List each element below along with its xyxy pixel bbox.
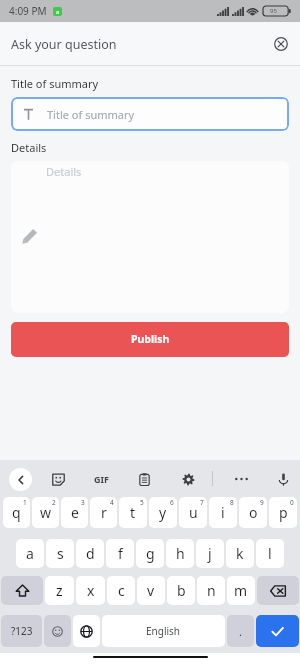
staticText: l [268,544,272,563]
staticText: w [40,503,52,522]
button[interactable]: t [119,497,147,528]
button[interactable]: More options [228,466,254,492]
staticText: 6 [170,498,174,507]
staticText: 5 [140,498,144,507]
button[interactable]: Clipboard [131,466,157,492]
staticText: 2 [52,498,56,507]
staticText: i [221,503,225,522]
button[interactable]: Shift [1,576,43,605]
staticText: e [71,503,79,522]
button[interactable]: i [209,497,237,528]
staticText: c [118,581,125,600]
staticText: 0 [290,498,294,507]
staticText: Details [11,140,47,155]
staticText: GIF [94,473,109,485]
staticText: . [239,624,242,639]
staticText: z [56,581,63,600]
staticText: h [176,544,185,563]
staticText: s [57,544,64,563]
button[interactable]: u [179,497,207,528]
staticText: 3 [81,498,85,507]
staticText: x [87,581,95,600]
staticText: 95 [270,7,277,15]
button[interactable]: a [16,539,44,568]
button[interactable]: Details [11,161,289,313]
button[interactable]: m [227,576,255,605]
staticText: 1 [23,498,27,507]
button[interactable]: GIF [88,466,114,492]
button[interactable]: Publish [11,322,289,357]
staticText: 8 [230,498,234,507]
button[interactable]: q [3,497,30,528]
button[interactable]: w [32,497,59,528]
button[interactable]: Back [7,466,33,492]
button[interactable]: k [226,539,254,568]
staticText: ?123 [11,624,33,638]
button[interactable]: c [107,576,135,605]
staticText: 9 [260,498,264,507]
button[interactable]: Emoji [44,615,71,647]
staticText: a [56,8,60,16]
staticText: Ask your question [11,36,117,53]
button[interactable]: d [76,539,104,568]
button[interactable]: Backspace [257,576,299,605]
button[interactable]: l [256,539,284,568]
button[interactable]: Voice input [270,466,296,492]
button[interactable]: Stickers [45,466,71,492]
button[interactable]: b [167,576,195,605]
staticText: y [159,503,167,522]
button[interactable]: Change language [73,615,100,647]
button[interactable]: . [227,615,254,647]
staticText: 7 [200,498,204,507]
staticText: g [146,544,155,563]
button[interactable]: o [239,497,267,528]
staticText: u [189,503,198,522]
staticText: f [118,544,123,563]
staticText: Publish [131,332,170,346]
staticText: p [279,503,288,522]
button[interactable]: s [46,539,74,568]
button[interactable]: v [137,576,165,605]
staticText: r [101,503,107,522]
staticText: Title of summary [11,76,99,91]
button[interactable]: English [102,615,225,647]
staticText: j [208,544,212,563]
button[interactable]: z [45,576,74,605]
button[interactable]: g [136,539,164,568]
button[interactable]: Enter [256,615,299,647]
button[interactable]: y [149,497,177,528]
staticText: b [177,581,186,600]
staticText: v [147,581,155,600]
button[interactable]: n [197,576,225,605]
staticText: d [86,544,95,563]
button[interactable]: f [106,539,134,568]
staticText: q [12,503,21,522]
staticText: Title of summary [47,107,135,122]
staticText: o [249,503,258,522]
staticText: m [234,581,248,600]
staticText: a [26,544,34,563]
staticText: n [207,581,216,600]
staticText: Details [46,164,82,179]
button[interactable]: r [90,497,117,528]
staticText: 4:09 PM [9,4,47,18]
button[interactable]: ?123 [1,615,42,647]
staticText: 4 [110,498,114,507]
button[interactable]: e [61,497,88,528]
button[interactable]: j [196,539,224,568]
staticText: k [236,544,244,563]
button[interactable]: h [166,539,194,568]
staticText: English [146,624,181,638]
button[interactable]: p [269,497,297,528]
staticText: t [130,503,136,522]
button[interactable]: Close [268,31,294,57]
button[interactable]: x [76,576,105,605]
button[interactable]: Title of summary [11,97,289,131]
button[interactable]: Settings [175,466,201,492]
